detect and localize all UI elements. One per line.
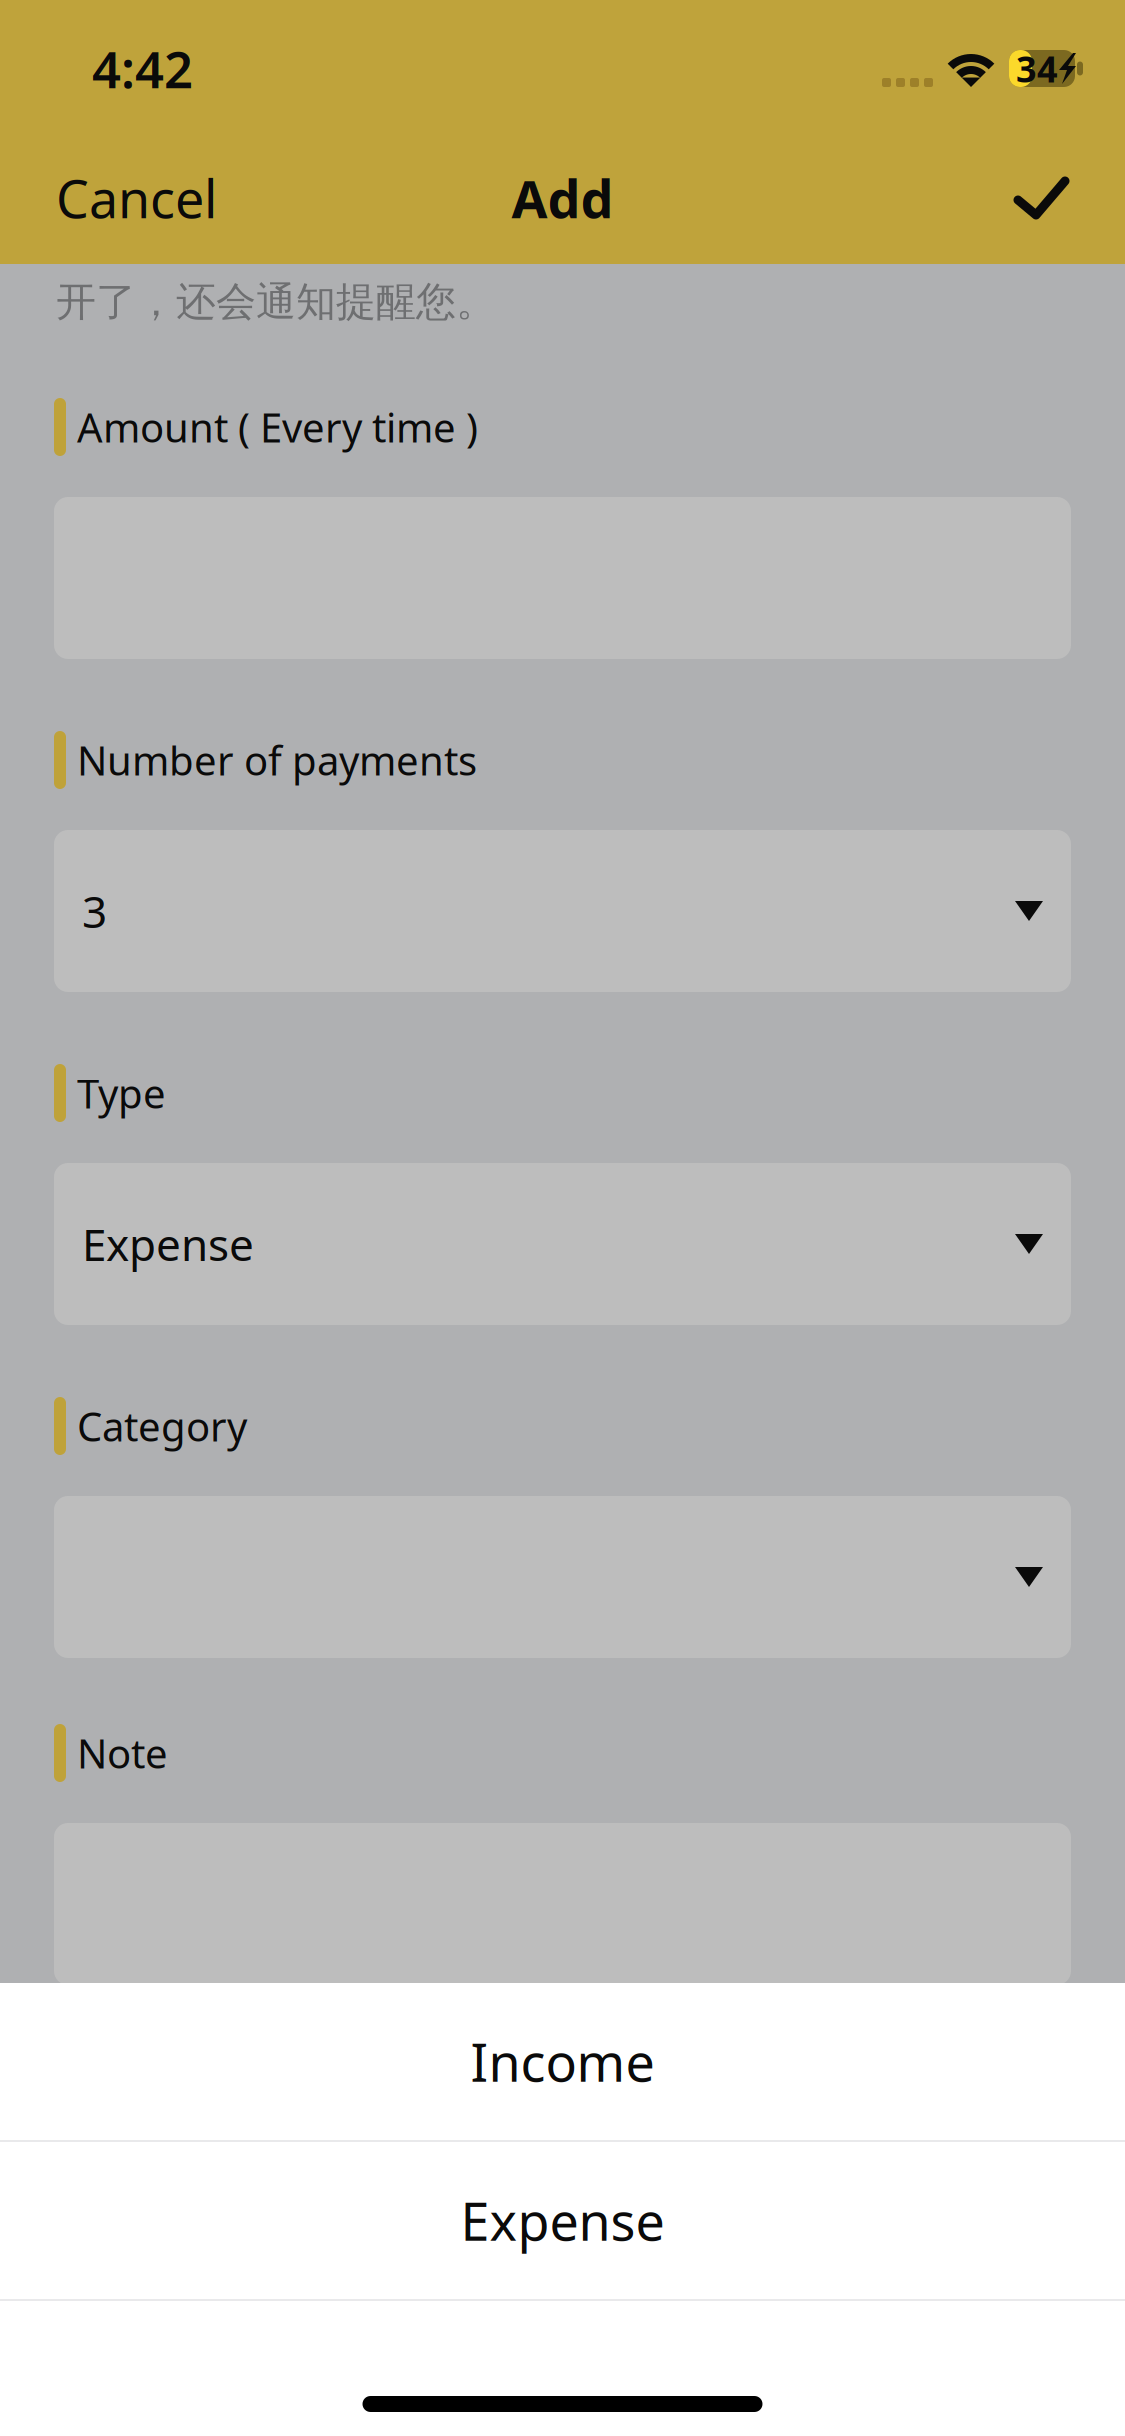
staticText: Amount ( Every time ) xyxy=(77,400,478,453)
staticText: Note xyxy=(77,1726,168,1779)
button[interactable] xyxy=(0,1823,1125,1985)
button[interactable] xyxy=(0,497,1125,659)
button[interactable]: Done xyxy=(974,132,1125,264)
staticText: Expense xyxy=(82,1215,254,1273)
button[interactable]: 3 xyxy=(0,830,1125,992)
staticText: 4:42 xyxy=(92,35,193,102)
button[interactable] xyxy=(0,1496,1125,1658)
staticText: Add xyxy=(511,163,613,233)
staticText: Cancel xyxy=(56,163,217,233)
staticText: Income xyxy=(470,2027,654,2096)
button[interactable]: Cancel xyxy=(0,132,273,264)
staticText: 3 xyxy=(82,882,107,940)
button[interactable]: Expense xyxy=(0,2142,1125,2299)
staticText: 开了，还会通知提醒您。 xyxy=(56,277,496,326)
button[interactable]: Income xyxy=(0,1983,1125,2140)
button[interactable]: Expense xyxy=(0,1163,1125,1325)
staticText: Number of payments xyxy=(77,733,477,786)
staticText: Category xyxy=(77,1399,247,1452)
staticText: Expense xyxy=(460,2186,664,2255)
staticText: 34 xyxy=(1016,45,1058,92)
staticText: Type xyxy=(77,1066,166,1119)
